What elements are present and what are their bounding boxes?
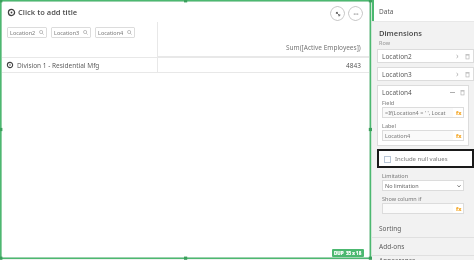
button[interactable]: Location4 xyxy=(95,27,135,38)
button[interactable]: Location4 xyxy=(377,85,469,99)
button[interactable]: Expression editor xyxy=(382,203,464,214)
button[interactable]: Delete xyxy=(464,53,471,60)
staticText: Appearance xyxy=(379,256,416,260)
staticText: Field xyxy=(382,99,395,106)
staticText: 4843 xyxy=(346,61,361,70)
button[interactable]: Appearance xyxy=(372,256,474,260)
staticText: fx xyxy=(456,109,462,116)
button[interactable]: Expression editor xyxy=(453,203,464,214)
button[interactable]: Location3 xyxy=(377,67,474,81)
staticText: Location4 xyxy=(385,132,411,139)
button[interactable]: Include null values xyxy=(377,149,474,168)
staticText: Limitation xyxy=(382,172,409,179)
staticText: No limitation xyxy=(385,182,457,189)
staticText: Include null values xyxy=(395,155,448,163)
staticText: Location4 xyxy=(98,29,124,36)
staticText: Sum([Active Employees]) xyxy=(286,43,361,52)
button[interactable]: Location2 xyxy=(7,27,47,38)
button[interactable]: Location3 xyxy=(51,27,91,38)
staticText: Division 1 - Residential Mfg xyxy=(17,61,100,70)
staticText: Location4 xyxy=(382,88,450,97)
button[interactable]: Delete xyxy=(464,71,471,78)
button[interactable]: Expression editor xyxy=(453,107,464,118)
staticText: Label xyxy=(382,122,396,129)
button[interactable]: No limitation xyxy=(382,180,464,191)
button[interactable]: Full screen xyxy=(330,6,345,21)
staticText: Location3 xyxy=(382,70,455,79)
button[interactable]: Location4 xyxy=(382,130,464,141)
button[interactable]: Delete xyxy=(459,89,466,96)
staticText: =If(Location4 = ' ', Locat xyxy=(385,109,446,116)
staticText: Dimensions xyxy=(379,28,422,38)
button[interactable]: Location2 xyxy=(377,49,474,63)
staticText: Location3 xyxy=(54,29,80,36)
button[interactable]: Division 1 - Residential Mfg xyxy=(2,58,369,72)
button[interactable]: =If(Location4 = ' ', Locat xyxy=(382,107,464,118)
staticText: 35 x 18 xyxy=(346,250,362,256)
button[interactable]: Click to add title xyxy=(2,2,369,22)
button[interactable]: More options xyxy=(348,6,363,21)
staticText: fx xyxy=(456,132,462,139)
button[interactable]: Add-ons xyxy=(372,238,474,255)
staticText: Row xyxy=(379,39,390,46)
button[interactable]: Sorting xyxy=(372,220,474,237)
staticText: Sorting xyxy=(379,224,402,233)
staticText: fx xyxy=(456,205,462,212)
staticText: Click to add title xyxy=(18,7,78,17)
button[interactable]: Data xyxy=(372,0,474,22)
staticText: Location2 xyxy=(10,29,36,36)
staticText: Show column if xyxy=(382,195,422,202)
staticText: Add-ons xyxy=(379,242,405,251)
staticText: Data xyxy=(379,7,394,16)
staticText: DUP xyxy=(334,250,344,256)
staticText: Location2 xyxy=(382,52,455,61)
button[interactable]: Expression editor xyxy=(453,130,464,141)
